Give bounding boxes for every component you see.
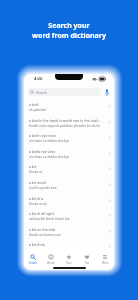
- button[interactable]: a bit much: [24, 176, 114, 192]
- staticText: kuchh zyaada hee: [29, 185, 57, 189]
- button[interactable]: a bit thick: [24, 238, 114, 254]
- button[interactable]: a bit of all right: [24, 207, 114, 223]
- button[interactable]: Voice search: [104, 88, 110, 97]
- staticText: a bit on the side: [29, 227, 56, 232]
- button[interactable]: a bird in the hand is worth two in the b…: [24, 114, 114, 130]
- staticText: a bit of a: [29, 196, 44, 201]
- staticText: thoda sa: [29, 169, 43, 173]
- staticText: a birds eye view: [29, 149, 55, 154]
- staticText: Words: [47, 261, 55, 265]
- staticText: a bird's eye view: [29, 133, 56, 138]
- staticText: ek pakshee: [29, 107, 47, 111]
- button[interactable]: More: [96, 253, 114, 266]
- staticText: word from dictionary: [32, 31, 106, 41]
- button[interactable]: Search: [28, 88, 101, 96]
- button[interactable]: a bit on the side: [24, 223, 114, 239]
- button[interactable]: a bit of a: [24, 192, 114, 208]
- button[interactable]: Quiz: [60, 253, 78, 266]
- button[interactable]: a birds eye view: [24, 145, 114, 161]
- button[interactable]: Fav: [78, 253, 96, 266]
- button[interactable]: a bit: [24, 160, 114, 176]
- button[interactable]: Words: [42, 253, 60, 266]
- staticText: thoda sa kinaare par: [29, 232, 61, 236]
- staticText: unchaee se dekha drishya: [29, 154, 70, 158]
- staticText: unchaee se dekha drishya: [29, 138, 70, 142]
- staticText: Search: [29, 261, 38, 265]
- staticText: 4:26: [34, 76, 43, 82]
- button[interactable]: Search: [24, 253, 42, 266]
- button[interactable]: a bird: [24, 98, 114, 114]
- staticText: More: [102, 261, 109, 265]
- staticText: haath mein aaya ek pakshee jhaadee ke do…: [29, 123, 108, 127]
- staticText: Search your: [48, 21, 90, 31]
- staticText: Search: [36, 90, 47, 95]
- staticText: a bit: [29, 164, 37, 169]
- staticText: thoda sa ek: [29, 201, 47, 205]
- staticText: Quiz: [66, 261, 72, 265]
- staticText: a bit of all right: [29, 211, 54, 216]
- staticText: a bird in the hand is worth two in the b…: [29, 118, 99, 123]
- staticText: Fav: [85, 261, 90, 265]
- staticText: a bird: [29, 102, 39, 107]
- staticText: a bit much: [29, 180, 47, 185]
- button[interactable]: a bird's eye view: [24, 129, 114, 145]
- staticText: sab kuchh theek thaak hai: [29, 216, 70, 220]
- staticText: a bit thick: [29, 242, 45, 247]
